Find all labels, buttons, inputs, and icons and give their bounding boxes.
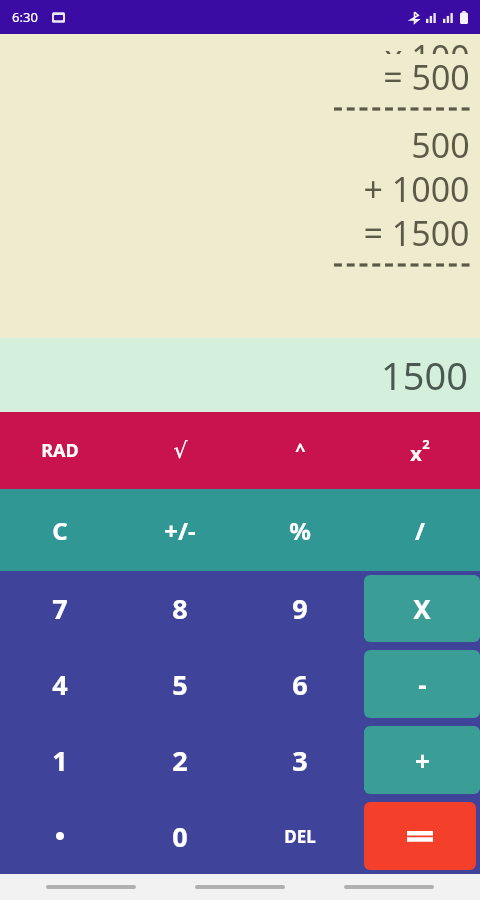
- button[interactable]: Add: [364, 726, 480, 794]
- staticText: +/-: [164, 514, 196, 547]
- staticText: 8: [172, 590, 188, 627]
- button[interactable]: /: [361, 490, 479, 570]
- button[interactable]: [344, 885, 434, 889]
- staticText: = 500: [383, 54, 470, 98]
- button[interactable]: 6: [241, 647, 359, 721]
- button[interactable]: 7: [1, 572, 119, 645]
- staticText: X: [413, 591, 431, 626]
- button[interactable]: %: [241, 490, 359, 570]
- staticText: 9: [292, 590, 308, 627]
- staticText: 0: [172, 818, 188, 855]
- staticText: %: [289, 514, 311, 547]
- staticText: 3: [292, 742, 308, 779]
- staticText: 1: [52, 742, 68, 779]
- button[interactable]: 4: [1, 647, 119, 721]
- staticText: 6: [292, 666, 308, 703]
- button[interactable]: +/-: [121, 490, 239, 570]
- button[interactable]: 2: [121, 723, 239, 797]
- staticText: 1500: [381, 349, 468, 401]
- staticText: C: [52, 514, 68, 547]
- button[interactable]: 1: [1, 723, 119, 797]
- button[interactable]: RAD: [1, 413, 119, 488]
- staticText: 2: [422, 435, 430, 453]
- staticText: /: [415, 514, 425, 547]
- button[interactable]: Multiply: [364, 575, 480, 642]
- button[interactable]: [195, 885, 285, 889]
- staticText: + 1000: [363, 166, 470, 210]
- button[interactable]: √: [121, 413, 239, 488]
- staticText: 500: [411, 122, 470, 166]
- staticText: RAD: [41, 438, 79, 463]
- staticText: √: [173, 438, 188, 464]
- staticText: 7: [52, 590, 68, 627]
- staticText: DEL: [284, 825, 316, 848]
- button[interactable]: DEL: [241, 799, 359, 873]
- staticText: 4: [52, 666, 68, 703]
- button[interactable]: x: [361, 413, 479, 488]
- staticText: ^: [295, 438, 306, 463]
- staticText: 2: [172, 742, 188, 779]
- staticText: x: [410, 440, 422, 467]
- button[interactable]: Subtract: [364, 650, 480, 718]
- button[interactable]: 0: [121, 799, 239, 873]
- button[interactable]: 8: [121, 572, 239, 645]
- button[interactable]: ^: [241, 413, 359, 488]
- staticText: +: [415, 743, 430, 778]
- button[interactable]: 5: [121, 647, 239, 721]
- button[interactable]: 9: [241, 572, 359, 645]
- button[interactable]: C: [1, 490, 119, 570]
- staticText: -: [418, 667, 427, 702]
- staticText: = 1500: [363, 210, 470, 254]
- staticText: 6:30: [12, 8, 38, 26]
- button[interactable]: Equals: [364, 802, 476, 870]
- staticText: x 100: [384, 34, 470, 54]
- button[interactable]: 3: [241, 723, 359, 797]
- button[interactable]: [46, 885, 136, 889]
- button[interactable]: [1, 799, 119, 873]
- staticText: 5: [172, 666, 188, 703]
